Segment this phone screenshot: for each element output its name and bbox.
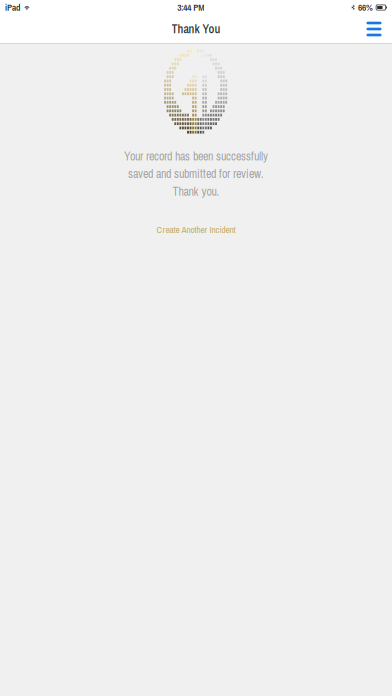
staticText: 3:44 PM: [177, 1, 204, 14]
staticText: Thank You: [171, 21, 220, 37]
staticText: 66%: [358, 1, 373, 14]
staticText: Create Another Incident: [156, 223, 235, 236]
staticText: saved and submitted for review.: [128, 166, 264, 182]
button[interactable]: Menu: [356, 17, 392, 41]
staticText: Thank you.: [172, 183, 219, 199]
staticText: iPad: [5, 1, 21, 14]
staticText: Your record has been successfully: [124, 148, 268, 164]
button[interactable]: Create Another Incident: [156, 223, 235, 236]
